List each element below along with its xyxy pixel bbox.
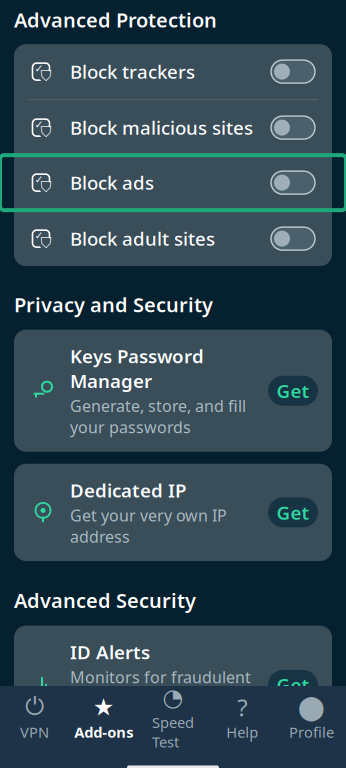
button[interactable]: ✓	[14, 211, 332, 266]
button[interactable]: ◔	[138, 687, 208, 751]
staticText: Get	[276, 500, 309, 525]
staticText: ⛉	[40, 69, 51, 84]
staticText: Block trackers	[70, 59, 195, 84]
staticText: ◔	[162, 684, 183, 711]
staticText: Get	[276, 672, 309, 697]
staticText: ⛉	[40, 125, 51, 140]
staticText: Block ads	[70, 170, 154, 195]
staticText: ✓	[34, 174, 43, 186]
staticText: Advanced Security	[14, 587, 196, 614]
staticText: Profile	[289, 722, 334, 742]
button[interactable]: Get	[268, 670, 318, 700]
button[interactable]: Get	[268, 497, 318, 527]
staticText: VPN	[20, 722, 49, 742]
staticText: Speed Test	[152, 712, 194, 751]
staticText: ?	[237, 691, 247, 723]
staticText: ✓	[34, 119, 43, 131]
staticText: Add-ons	[74, 722, 133, 742]
staticText: ✓	[34, 63, 43, 75]
staticText: Block malicious sites	[70, 115, 253, 140]
staticText: Advanced Protection	[14, 7, 217, 33]
button[interactable]: ✓	[14, 44, 332, 99]
staticText: ⛉	[40, 236, 51, 251]
staticText: Monitors for fraudulent use of your pers…	[70, 666, 251, 730]
staticText: ⛉	[40, 180, 51, 195]
staticText: Get your very own IP address	[70, 505, 227, 547]
staticText: Keys Password Manager	[70, 344, 204, 393]
staticText: Get	[276, 378, 309, 403]
staticText: Dedicated IP	[70, 478, 186, 503]
button[interactable]: ?	[208, 697, 277, 742]
staticText: ✓	[34, 230, 43, 242]
button[interactable]: ID Alerts	[14, 626, 332, 744]
button[interactable]: Dedicated IP	[14, 464, 332, 561]
staticText: ⬤	[298, 694, 325, 721]
button[interactable]: ⏻	[0, 697, 69, 742]
staticText: ★	[93, 694, 115, 721]
button[interactable]: ✓	[14, 155, 332, 210]
staticText: ⏻	[25, 696, 44, 719]
staticText: Help	[226, 722, 258, 742]
button[interactable]: Keys Password Manager	[14, 330, 332, 452]
button[interactable]: ✓	[14, 100, 332, 155]
staticText: ID Alerts	[70, 640, 150, 664]
staticText: Block adult sites	[70, 226, 215, 251]
staticText: Privacy and Security	[14, 291, 213, 318]
staticText: Generate, store, and fill your passwords	[70, 395, 246, 438]
button[interactable]: ★	[69, 697, 138, 742]
button[interactable]: ID Theft Insurance	[14, 756, 332, 768]
button[interactable]: ⬤	[277, 697, 346, 742]
button[interactable]: Get	[268, 376, 318, 406]
